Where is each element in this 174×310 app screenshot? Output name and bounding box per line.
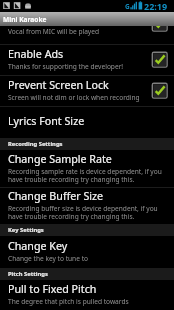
other: Toggle setting (151, 26, 167, 32)
staticText: Pitch Settings (8, 270, 48, 278)
staticText: Key Settings (8, 226, 44, 234)
button[interactable]: Enable Ads (0, 45, 174, 75)
button[interactable]: Pull to Fixed Pitch (0, 280, 174, 309)
staticText: G (125, 2, 130, 11)
other: Toggle setting (151, 83, 167, 99)
staticText: 22:19 (144, 0, 168, 12)
button[interactable]: Play Vocal from MIC (0, 26, 174, 44)
staticText: The degree that pitch is pulled towards (8, 297, 129, 306)
staticText: Vocal from MIC will be played (8, 27, 99, 36)
staticText: Screen will not dim or lock when recordi… (8, 93, 140, 102)
staticText: Mini Karaoke (3, 15, 47, 24)
staticText: Change the key to tune to (8, 254, 88, 263)
staticText: Enable Ads (8, 47, 64, 62)
button[interactable]: Change Sample Rate (0, 150, 174, 187)
button[interactable]: Change Buffer Size (0, 188, 174, 224)
button[interactable]: Change Key (0, 236, 174, 268)
staticText: Change Buffer Size (8, 189, 104, 204)
staticText: Recording Settings (8, 140, 63, 148)
staticText: Pull to Fixed Pitch (8, 282, 97, 297)
other: Toggle setting (151, 52, 167, 68)
button[interactable]: Lyrics Font Size (0, 107, 174, 138)
staticText: Prevent Screen Lock (8, 78, 109, 93)
staticText: Thanks for supporting the developer! (8, 62, 124, 71)
staticText: Change Sample Rate (8, 152, 112, 167)
staticText: Change Key (8, 239, 68, 254)
staticText: Recording buffer size is device dependen… (8, 204, 158, 221)
staticText: Recording sample rate is device dependen… (8, 167, 162, 184)
button[interactable]: Prevent Screen Lock (0, 76, 174, 106)
staticText: Lyrics Font Size (8, 114, 85, 129)
